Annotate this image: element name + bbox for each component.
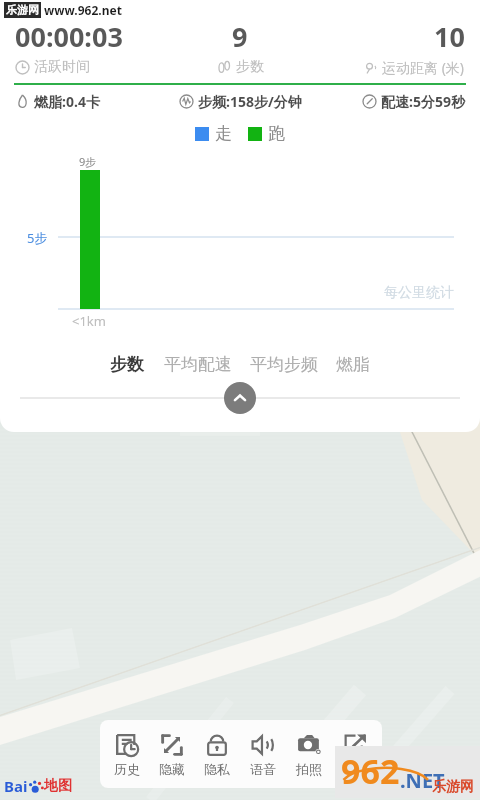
staticText: 配速:5分59秒 — [381, 92, 465, 111]
button[interactable]: Collapse — [224, 382, 256, 414]
staticText: 5步 — [27, 229, 48, 247]
staticText: 9步 — [79, 154, 97, 169]
staticText: 运动距离 (米) — [382, 58, 465, 77]
button[interactable]: 分享 — [332, 720, 378, 788]
staticText: 隐私 — [204, 761, 230, 777]
staticText: .NET — [400, 767, 445, 794]
button[interactable]: 隐藏 — [149, 720, 194, 788]
staticText: 拍照 — [296, 761, 322, 777]
staticText: 00:00:03 — [15, 18, 123, 55]
staticText: 燃脂:0.4卡 — [34, 92, 100, 111]
button[interactable]: 步数 — [108, 348, 146, 381]
button[interactable]: 燃脂 — [334, 348, 372, 381]
staticText: 历史 — [114, 761, 140, 777]
staticText: 分享 — [342, 761, 368, 777]
staticText: www.962.net — [44, 2, 122, 18]
staticText: 燃脂 — [336, 354, 370, 375]
staticText: 平均步频 — [250, 354, 318, 375]
staticText: 每公里统计 — [384, 284, 454, 302]
staticText: 跑 — [268, 123, 285, 144]
staticText: 活跃时间 — [34, 58, 90, 76]
staticText: 走 — [215, 123, 232, 144]
staticText: Bai — [4, 776, 28, 796]
staticText: 步数 — [236, 58, 264, 76]
staticText: 9 — [232, 18, 248, 55]
staticText: 语音 — [250, 761, 276, 777]
staticText: 步数 — [110, 354, 144, 375]
button[interactable]: 历史 — [104, 720, 149, 788]
staticText: 962 — [341, 748, 400, 794]
button[interactable]: 平均配速 — [162, 348, 234, 381]
staticText: 地图 — [44, 777, 72, 795]
staticText: 10 — [434, 18, 465, 55]
button[interactable]: 隐私 — [194, 720, 240, 788]
staticText: <1km — [72, 312, 106, 330]
staticText: 步频:158步/分钟 — [198, 92, 302, 111]
button[interactable]: 语音 — [240, 720, 286, 788]
staticText: 平均配速 — [164, 354, 232, 375]
button[interactable]: 拍照 — [286, 720, 332, 788]
staticText: 乐游网 — [432, 778, 474, 796]
staticText: 隐藏 — [159, 761, 185, 777]
button[interactable]: 平均步频 — [248, 348, 320, 381]
staticText: 乐游网 — [6, 3, 39, 17]
